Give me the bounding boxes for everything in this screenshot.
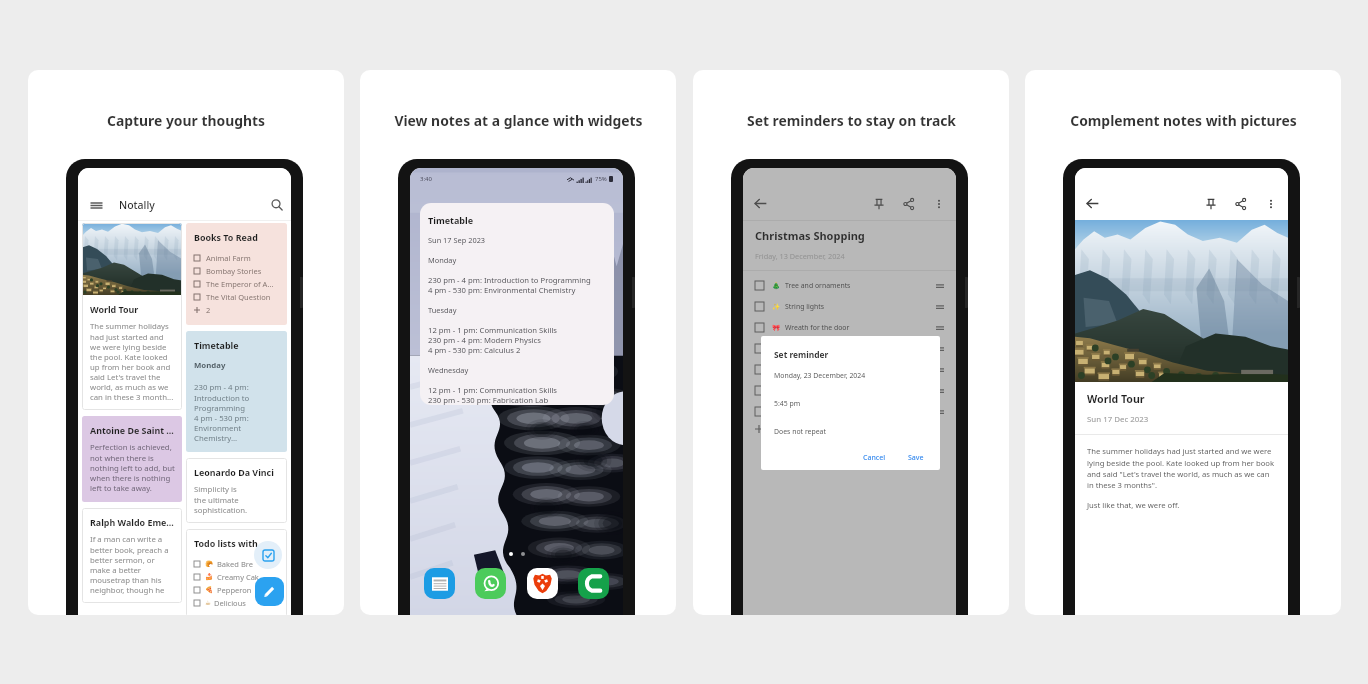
button[interactable]: Timetable: [186, 331, 287, 452]
staticText: Pepperon: [217, 585, 252, 595]
staticText: The Vital Question: [206, 292, 271, 302]
staticText: 75%: [595, 175, 607, 183]
button[interactable]: 🎄: [755, 275, 944, 296]
staticText: 230 pm - 4 pm: Introduction to Programmi…: [194, 382, 280, 443]
staticText: Books To Read: [194, 231, 258, 243]
button[interactable]: The Emperor of A...: [194, 277, 274, 290]
button[interactable]: Leonardo Da Vinci: [186, 458, 287, 523]
button[interactable]: ✨: [755, 296, 944, 317]
staticText: World Tour: [1087, 392, 1145, 406]
staticText: Wednesday: [428, 365, 469, 375]
button[interactable]: Share: [903, 198, 915, 210]
button[interactable]: [755, 401, 944, 422]
staticText: Monday, 23 December, 2024: [774, 371, 866, 380]
button[interactable]: Antoine De Saint ...: [82, 416, 182, 502]
staticText: Notally: [119, 198, 155, 212]
staticText: 230 pm - 4 pm: Introduction to Programmi…: [428, 275, 591, 295]
staticText: 🥐: [205, 560, 214, 568]
staticText: Baked Bre: [217, 559, 253, 569]
button[interactable]: World Tour: [82, 223, 182, 410]
button[interactable]: Phone: [578, 568, 609, 599]
button[interactable]: The Vital Question: [194, 290, 271, 303]
button[interactable]: 🥐: [194, 557, 253, 570]
button[interactable]: 🍕: [194, 583, 252, 596]
button[interactable]: Brave browser: [527, 568, 558, 599]
staticText: Creamy Cak: [217, 572, 259, 582]
staticText: Timetable: [194, 339, 239, 351]
button[interactable]: Back: [1086, 197, 1099, 210]
staticText: View notes at a glance with widgets: [394, 111, 643, 130]
staticText: Does not repeat: [774, 427, 826, 436]
button[interactable]: Menu: [78, 190, 291, 220]
staticText: Save: [908, 453, 924, 463]
staticText: Friday, 13 December, 2024: [755, 251, 845, 261]
staticText: Ralph Waldo Eme...: [90, 516, 174, 528]
staticText: Tree and ornaments: [785, 281, 851, 290]
staticText: Christmas Shopping: [755, 228, 865, 243]
button[interactable]: [755, 338, 944, 359]
staticText: Tuesday: [428, 305, 457, 315]
staticText: Cancel: [863, 453, 886, 463]
button[interactable]: News app: [424, 568, 455, 599]
button[interactable]: More options: [933, 198, 945, 210]
button[interactable]: Back: [754, 197, 767, 210]
staticText: The Emperor of A...: [206, 279, 274, 289]
staticText: Sun 17 Sep 2023: [428, 235, 486, 245]
staticText: Delicious: [214, 598, 246, 608]
staticText: Perfection is achieved, not when there i…: [90, 442, 175, 493]
staticText: 🍰: [205, 573, 214, 581]
button[interactable]: New note: [255, 577, 284, 606]
staticText: Animal Farm: [206, 253, 251, 263]
button[interactable]: WhatsApp: [475, 568, 506, 599]
staticText: Todo lists with: [194, 537, 258, 549]
button[interactable]: [755, 359, 944, 380]
staticText: Set reminders to stay on track: [747, 111, 956, 130]
staticText: Leonardo Da Vinci: [194, 466, 274, 478]
button[interactable]: Animal Farm: [194, 251, 251, 264]
staticText: Timetable: [428, 214, 474, 226]
staticText: Complement notes with pictures: [1070, 111, 1297, 130]
staticText: Simplicity is the ultimate sophisticatio…: [194, 484, 248, 515]
staticText: ✨: [772, 303, 781, 311]
staticText: The summer holidays had just started and…: [90, 321, 175, 402]
staticText: Bombay Stories: [206, 266, 262, 276]
button[interactable]: Share: [1235, 198, 1247, 210]
staticText: Monday: [194, 360, 226, 371]
staticText: 🍕: [205, 586, 214, 594]
staticText: Capture your thoughts: [107, 111, 265, 130]
staticText: 3:40: [420, 175, 432, 183]
button[interactable]: Pin: [1205, 198, 1217, 210]
staticText: 🎀: [772, 324, 781, 332]
button[interactable]: Books To Read: [186, 223, 287, 325]
button[interactable]: 🎀: [755, 317, 944, 338]
button[interactable]: Ralph Waldo Eme...: [82, 508, 182, 603]
staticText: Sun 17 Dec 2023: [1087, 414, 1149, 425]
staticText: Set reminder: [774, 349, 829, 360]
staticText: World Tour: [90, 303, 139, 315]
other: Search: [271, 199, 283, 211]
staticText: 12 pm - 1 pm: Communication Skills 230 p…: [428, 385, 558, 405]
button[interactable]: Bombay Stories: [194, 264, 262, 277]
button[interactable]: [755, 380, 944, 401]
other: Menu: [90, 199, 103, 212]
staticText: 5:45 pm: [774, 399, 801, 408]
button[interactable]: Cancel: [859, 451, 890, 465]
button[interactable]: New list: [254, 541, 282, 569]
staticText: Antoine De Saint ...: [90, 424, 174, 436]
staticText: Wreath for the door: [785, 323, 850, 332]
staticText: Monday: [428, 255, 457, 265]
button[interactable]: More options: [1265, 198, 1277, 210]
staticText: If a man can write a better book, preach…: [90, 534, 175, 595]
button[interactable]: Save: [904, 451, 928, 465]
button[interactable]: Pin: [873, 198, 885, 210]
staticText: 12 pm - 1 pm: Communication Skills 230 p…: [428, 325, 558, 355]
button[interactable]: Timetable: [420, 203, 614, 405]
staticText: The summer holidays had just started and…: [1087, 446, 1276, 490]
button[interactable]: ☕: [194, 596, 246, 609]
staticText: 2: [206, 305, 211, 315]
staticText: String lights: [785, 302, 825, 311]
button[interactable]: Todo lists with: [186, 529, 287, 615]
staticText: 🎄: [772, 282, 781, 290]
staticText: ☕: [205, 599, 211, 607]
button[interactable]: 🍰: [194, 570, 259, 583]
